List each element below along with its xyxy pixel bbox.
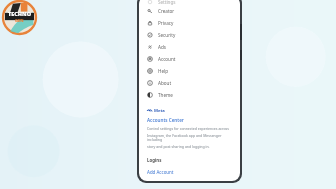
staticText: About	[158, 80, 172, 86]
button[interactable]: Accounts Center	[147, 117, 184, 123]
button[interactable]: Add Account	[147, 169, 174, 175]
staticText: Help	[158, 68, 169, 74]
staticText: Theme	[158, 92, 173, 98]
staticText: Creator	[158, 8, 175, 14]
staticText: story and post sharing and logging in.	[147, 144, 210, 149]
button[interactable]: Security	[139, 29, 240, 41]
staticText: Meta	[154, 108, 165, 114]
button[interactable]: Ads	[139, 41, 240, 53]
staticText: Add Account	[147, 169, 174, 175]
button[interactable]: Settings	[139, 0, 240, 5]
button[interactable]: Theme	[139, 89, 240, 101]
staticText: TECHNO	[8, 10, 32, 17]
staticText: Accounts Center	[147, 117, 184, 123]
button[interactable]: Creator	[139, 5, 240, 17]
staticText: Control settings for connected experienc…	[147, 126, 229, 131]
staticText: Instagram, the Facebook app and Messenge…	[147, 133, 232, 142]
staticText: Settings	[158, 0, 176, 5]
staticText: GEN	[15, 18, 24, 23]
staticText: Ads	[158, 44, 166, 50]
button[interactable]: Privacy	[139, 17, 240, 29]
staticText: Security	[158, 32, 176, 38]
button[interactable]: Help	[139, 65, 240, 77]
staticText: Privacy	[158, 20, 174, 26]
button[interactable]: Account	[139, 53, 240, 65]
button[interactable]: About	[139, 77, 240, 89]
staticText: Logins	[147, 157, 162, 163]
staticText: Account	[158, 56, 176, 62]
